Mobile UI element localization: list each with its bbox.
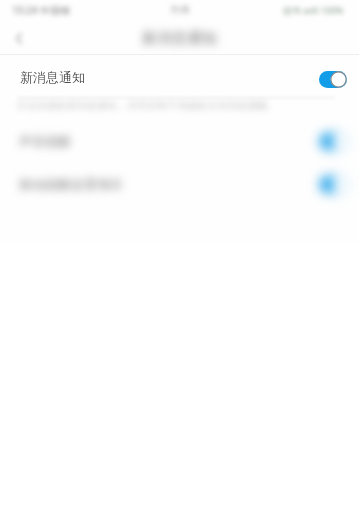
staticText: 新消息通知 (142, 29, 217, 48)
button[interactable]: 声音提醒 (0, 122, 359, 160)
staticText: 声音提醒 (19, 133, 71, 149)
staticText: 10:24 中国移 (12, 3, 71, 16)
staticText: 振动提醒设置项目 (19, 176, 123, 192)
staticText: 先锋 (170, 3, 190, 16)
staticText: 信号 wifi 100% (283, 4, 344, 16)
button[interactable]: 振动提醒设置项目 (0, 165, 359, 203)
button[interactable]: Back (4, 23, 34, 53)
staticText: 开启后接收新消息通知，关闭后将不再接收任何消息提醒。 (17, 99, 277, 112)
button[interactable]: Toggle notification (319, 71, 347, 88)
staticText: 新消息通知 (20, 69, 85, 85)
button[interactable]: Toggle notification (320, 176, 348, 193)
button[interactable]: Toggle notification (320, 133, 348, 150)
button[interactable]: 新消息通知 (0, 55, 359, 98)
